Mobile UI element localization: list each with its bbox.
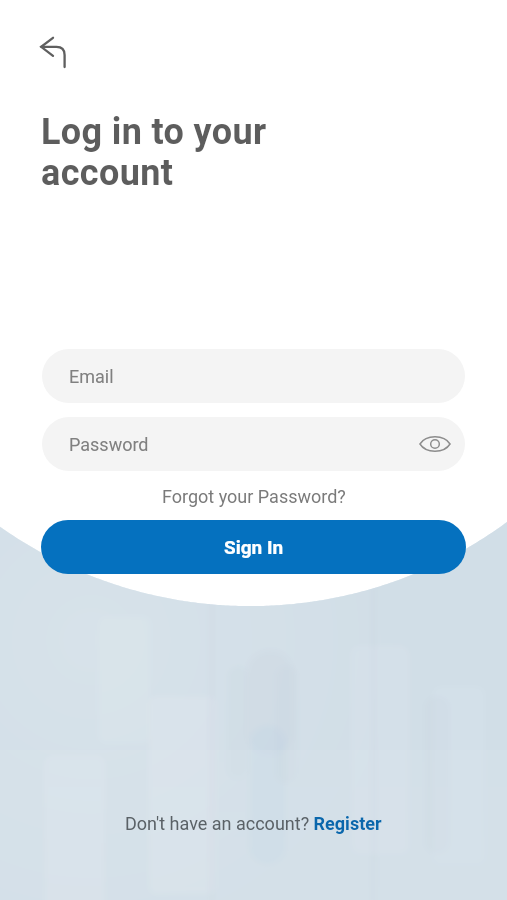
- staticText: Sign In: [224, 536, 284, 558]
- staticText: Don't have an account? Register: [125, 813, 382, 834]
- staticText: Password: [69, 434, 149, 455]
- button[interactable]: Sign In: [41, 520, 466, 574]
- button[interactable]: Email: [42, 349, 465, 403]
- button[interactable]: Don't have an account? Register: [119, 809, 388, 838]
- button[interactable]: Forgot your Password?: [154, 484, 354, 509]
- button[interactable]: Show password: [417, 426, 453, 462]
- button[interactable]: Password: [42, 417, 465, 471]
- button[interactable]: Back: [29, 26, 77, 74]
- staticText: Email: [69, 366, 114, 387]
- staticText: Log in to your account: [41, 111, 267, 194]
- staticText: Forgot your Password?: [162, 486, 346, 507]
